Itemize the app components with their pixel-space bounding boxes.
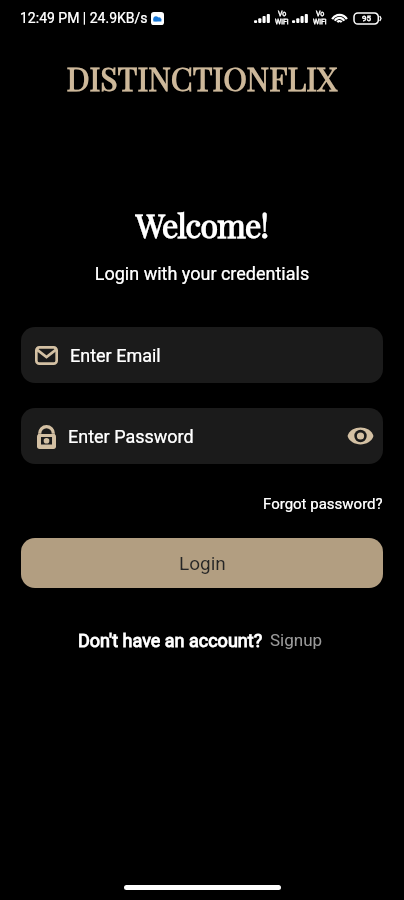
- button[interactable]: Login: [21, 538, 383, 588]
- staticText: Login: [179, 552, 226, 574]
- staticText: Vo: [278, 10, 287, 18]
- staticText: Enter Email: [70, 345, 161, 366]
- staticText: Vo: [316, 10, 325, 18]
- staticText: WiFi: [313, 18, 327, 26]
- button[interactable]: Show password: [345, 421, 375, 451]
- staticText: DISTINCTIONFLIX: [0, 56, 404, 99]
- staticText: Welcome!: [0, 203, 404, 246]
- button[interactable]: Forgot password?: [255, 491, 391, 517]
- staticText: 95: [362, 14, 371, 23]
- staticText: WiFi: [275, 18, 289, 26]
- staticText: Forgot password?: [263, 495, 383, 513]
- button[interactable]: Signup: [263, 627, 327, 653]
- staticText: Enter Password: [68, 426, 194, 447]
- staticText: Signup: [270, 630, 323, 650]
- staticText: Login with your credentials: [0, 263, 404, 284]
- button[interactable]: Enter Email: [21, 327, 383, 383]
- staticText: 12:49 PM | 24.9KB/s: [20, 10, 148, 26]
- staticText: Don't have an account?: [78, 630, 263, 651]
- button[interactable]: Enter Password: [21, 408, 383, 464]
